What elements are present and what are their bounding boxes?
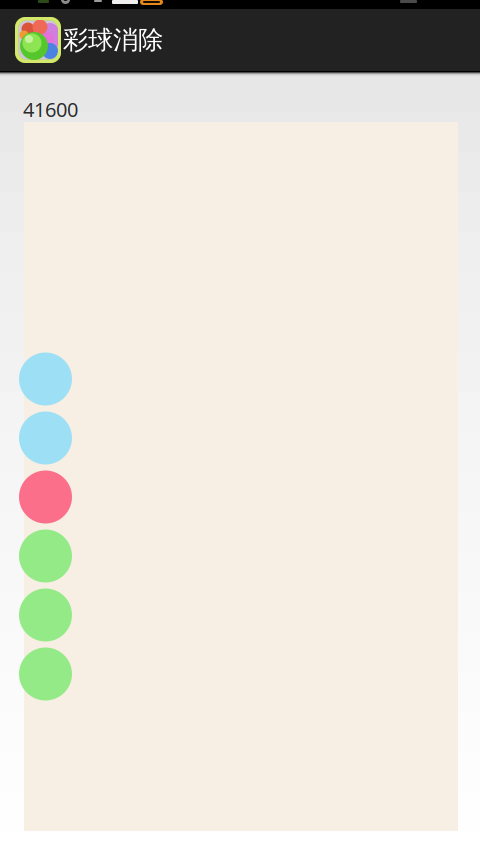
button[interactable]: Green bubble [19, 588, 72, 641]
button[interactable]: Green bubble [19, 647, 72, 700]
button[interactable]: 彩球消除 [0, 9, 480, 71]
staticText: 彩球消除 [63, 24, 163, 55]
button[interactable]: Blue bubble [19, 352, 72, 405]
button[interactable]: Blue bubble [19, 411, 72, 464]
staticText: 41600 [23, 96, 78, 123]
button[interactable]: Green bubble [19, 529, 72, 582]
button[interactable]: Pink bubble [19, 470, 72, 523]
